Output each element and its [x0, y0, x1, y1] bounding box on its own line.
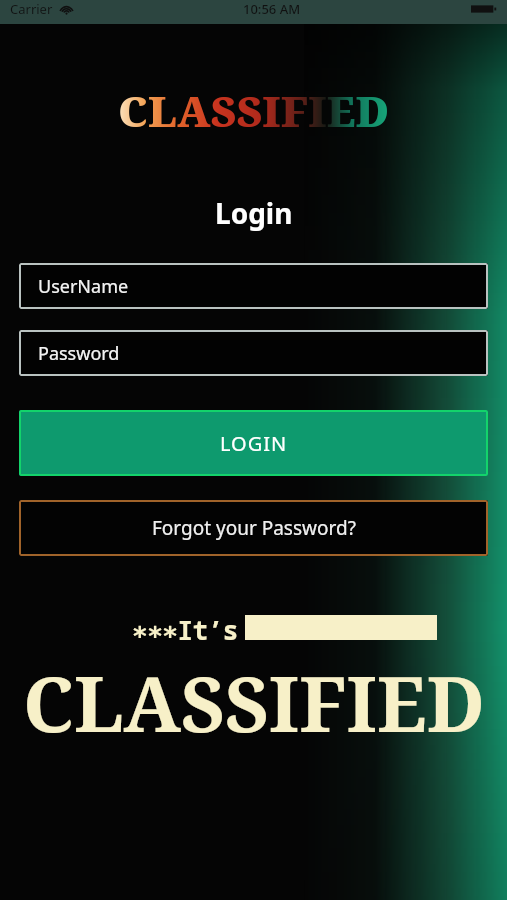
staticText: Carrier: [10, 0, 53, 18]
button[interactable]: LOGIN: [19, 410, 488, 476]
staticText: CLASSIFIED: [23, 651, 485, 755]
staticText: Forgot your Password?: [152, 515, 356, 541]
button[interactable]: Forgot your Password?: [19, 500, 488, 556]
staticText: ∗∗∗It’s: [132, 612, 238, 642]
staticText: UserName: [38, 274, 129, 299]
staticText: Login: [215, 194, 293, 232]
button[interactable]: UserName: [19, 263, 488, 309]
staticText: 10:56 AM: [243, 0, 301, 18]
staticText: CLASSIFIED: [118, 82, 390, 139]
staticText: Password: [38, 341, 120, 366]
staticText: LOGIN: [220, 430, 288, 457]
button[interactable]: Password: [19, 330, 488, 376]
